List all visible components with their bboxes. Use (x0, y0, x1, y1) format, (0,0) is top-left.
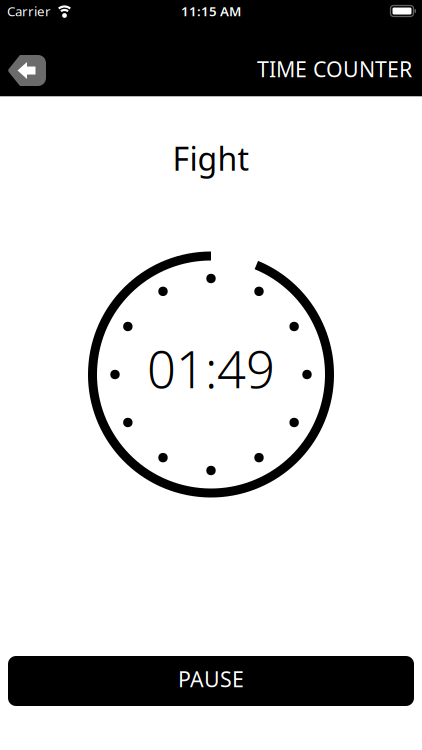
staticText: Fight (172, 137, 249, 179)
staticText: TIME COUNTER (257, 55, 412, 83)
staticText: PAUSE (178, 665, 244, 693)
staticText: 01:49 (147, 335, 275, 402)
button[interactable]: PAUSE (8, 656, 414, 706)
staticText: 11:15 AM (181, 2, 241, 20)
button[interactable]: Back (7, 55, 46, 86)
staticText: Carrier (7, 2, 51, 20)
